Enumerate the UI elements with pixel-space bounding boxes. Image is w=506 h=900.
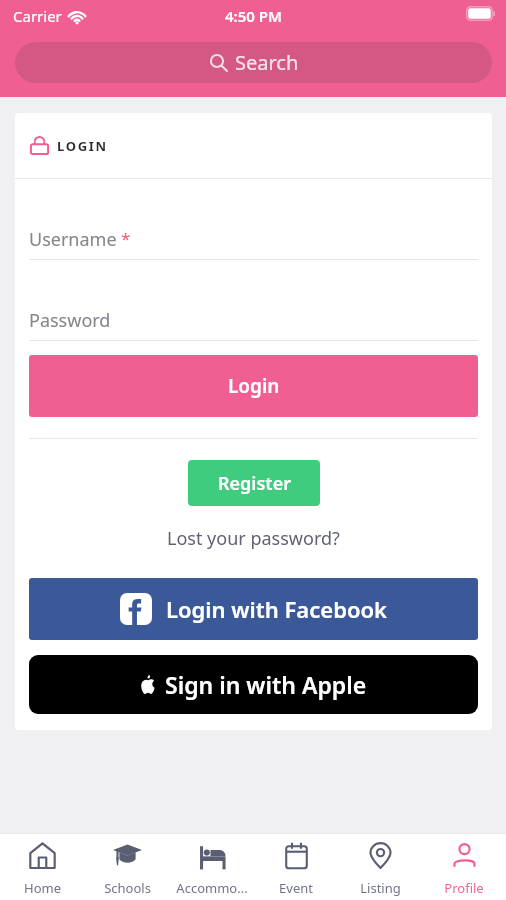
button[interactable]: Event: [254, 834, 338, 900]
staticText: Password: [29, 308, 111, 328]
button[interactable]: Search: [15, 42, 492, 83]
staticText: Home: [24, 879, 61, 897]
button[interactable]: Accommo...: [170, 834, 254, 900]
button[interactable]: Home: [0, 834, 85, 900]
button[interactable]: Login with Facebook: [29, 578, 478, 640]
staticText: Schools: [104, 879, 151, 897]
staticText: Accommo...: [176, 879, 248, 897]
staticText: Sign in with Apple: [165, 669, 367, 700]
staticText: Login with Facebook: [166, 594, 387, 624]
button[interactable]: Login: [29, 355, 478, 417]
staticText: Event: [279, 879, 313, 897]
staticText: LOGIN: [57, 137, 108, 155]
button[interactable]: Schools: [85, 834, 170, 900]
button[interactable]: Sign in with Apple: [29, 655, 478, 714]
staticText: Listing: [360, 879, 401, 897]
button[interactable]: Lost your password?: [161, 522, 346, 555]
staticText: *: [121, 227, 131, 247]
button[interactable]: Profile: [422, 834, 506, 900]
staticText: Search: [235, 49, 299, 76]
staticText: Username: [29, 227, 117, 247]
staticText: Lost your password?: [167, 526, 340, 551]
button[interactable]: Register: [188, 460, 320, 506]
staticText: Profile: [444, 879, 484, 897]
button[interactable]: Listing: [338, 834, 422, 900]
staticText: Login: [228, 373, 280, 399]
staticText: 4:50 PM: [225, 6, 282, 26]
staticText: Carrier: [13, 6, 62, 26]
staticText: Register: [218, 471, 291, 496]
